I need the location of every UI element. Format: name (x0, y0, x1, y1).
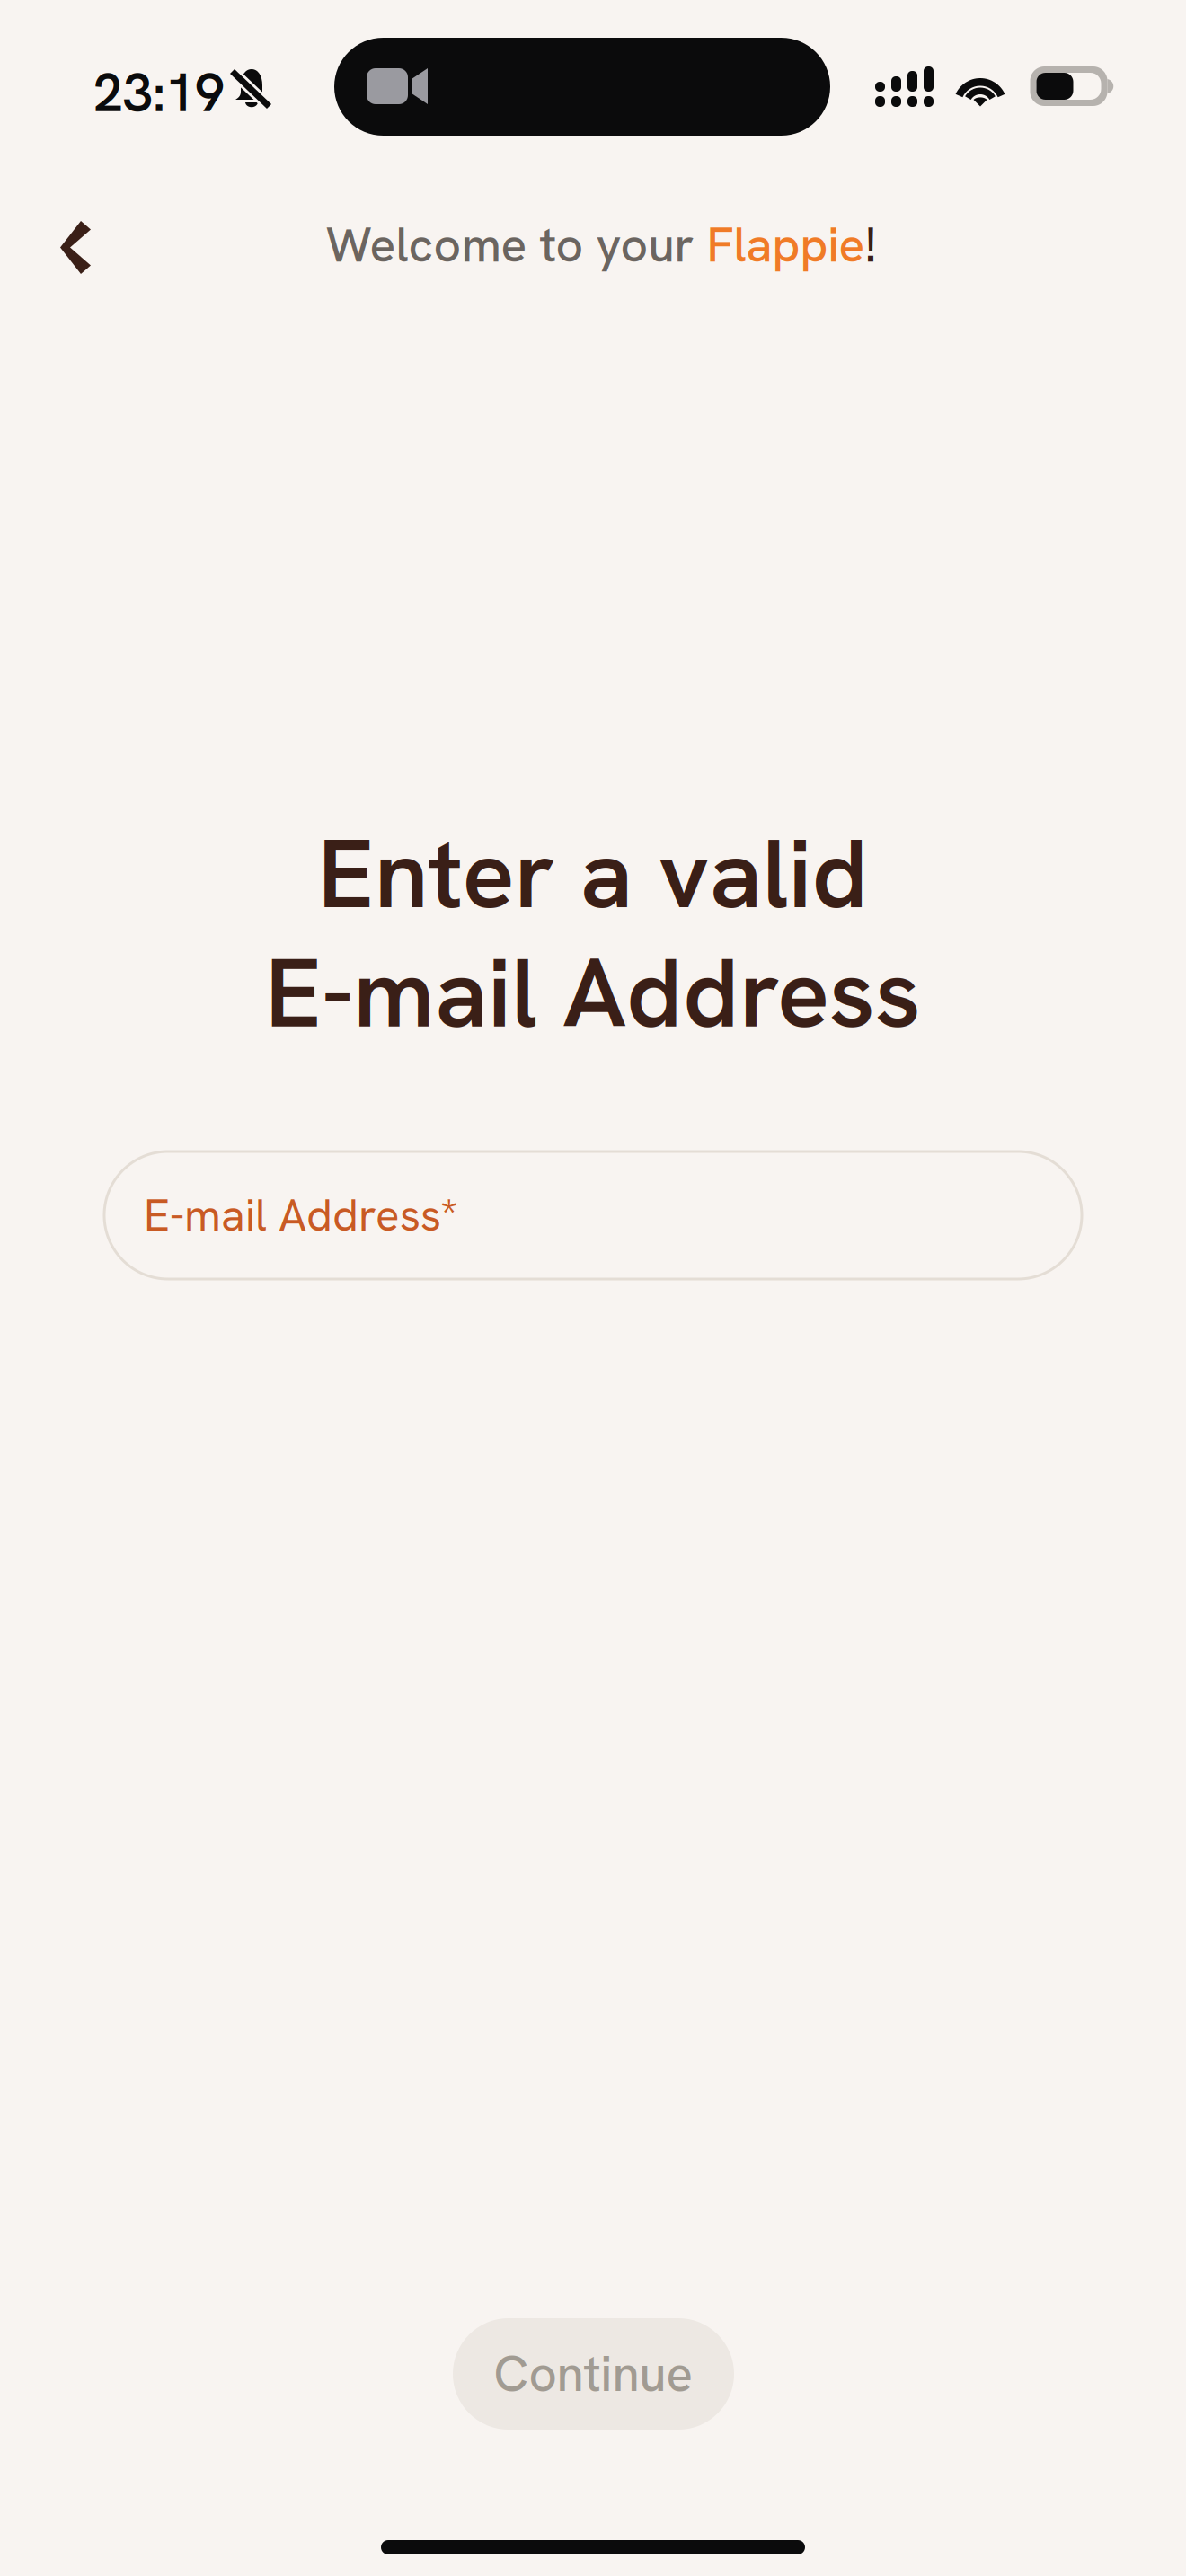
button[interactable]: Continue (453, 2318, 734, 2430)
staticText: Welcome to your (326, 214, 707, 276)
staticText: E-mail Address (265, 929, 921, 1056)
staticText: 23:19 (93, 58, 225, 127)
staticText: Flappie (707, 214, 865, 276)
staticText: ! (865, 214, 876, 276)
staticText: Enter a valid (318, 810, 868, 937)
button[interactable]: Back (0, 190, 145, 304)
staticText: Continue (494, 2342, 693, 2406)
staticText: E-mail Address* (144, 1186, 458, 1244)
button[interactable]: E-mail Address* (104, 1151, 1082, 1279)
